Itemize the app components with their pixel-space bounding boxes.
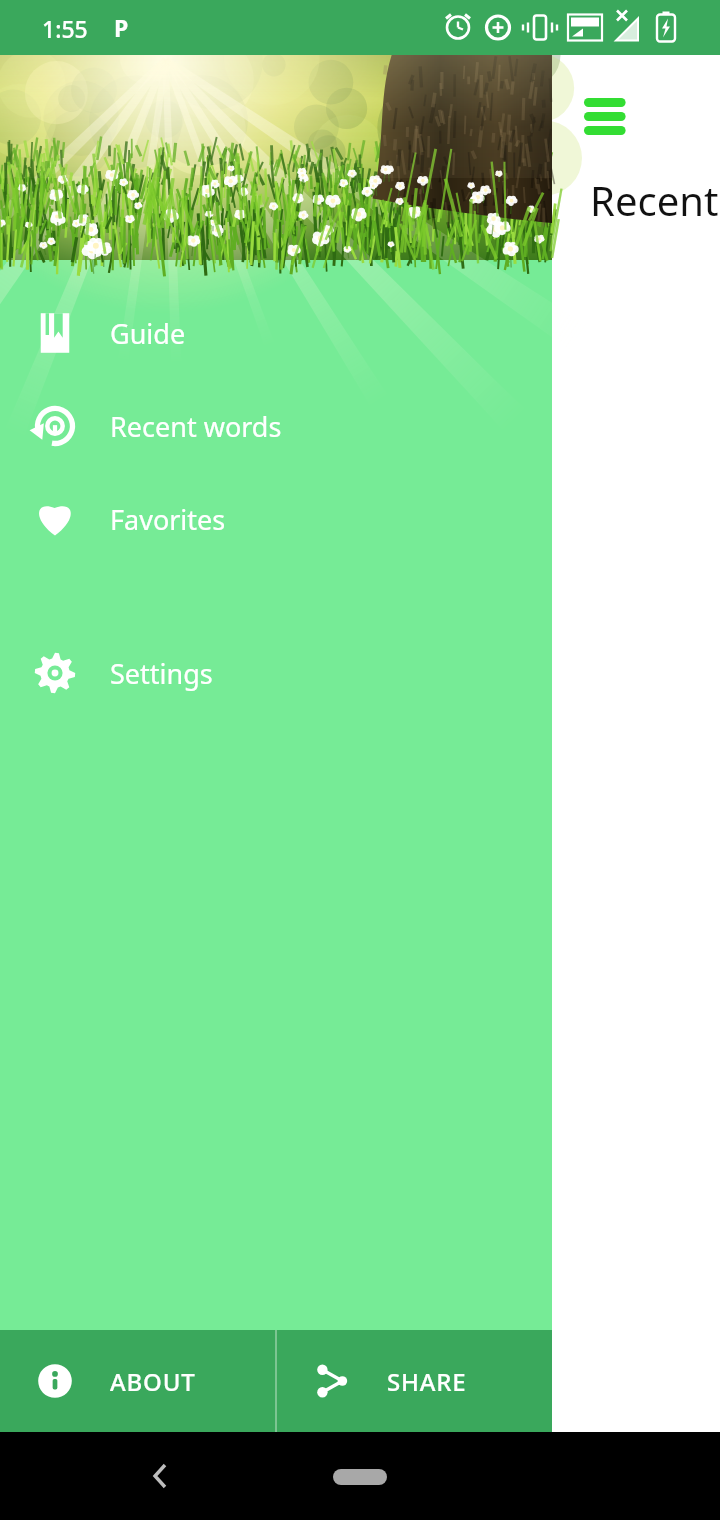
button[interactable]: SHARE: [277, 1330, 552, 1432]
button[interactable]: Open navigation drawer: [584, 92, 636, 138]
staticText: Favorites: [110, 501, 226, 538]
staticText: SHARE: [387, 1365, 467, 1398]
staticText: Guide: [110, 315, 186, 352]
button[interactable]: Home: [333, 1469, 387, 1485]
button[interactable]: Recent words: [0, 391, 552, 461]
staticText: 1:55: [42, 13, 88, 44]
button[interactable]: Settings: [0, 638, 552, 708]
staticText: Recent words: [110, 408, 282, 445]
staticText: Settings: [110, 655, 213, 692]
button[interactable]: Guide: [0, 298, 552, 368]
button[interactable]: ABOUT: [0, 1330, 275, 1432]
staticText: Recent words: [590, 173, 720, 227]
staticText: P: [114, 12, 129, 43]
staticText: ABOUT: [110, 1365, 196, 1398]
button[interactable]: Back: [135, 1451, 185, 1501]
button[interactable]: Favorites: [0, 484, 552, 554]
